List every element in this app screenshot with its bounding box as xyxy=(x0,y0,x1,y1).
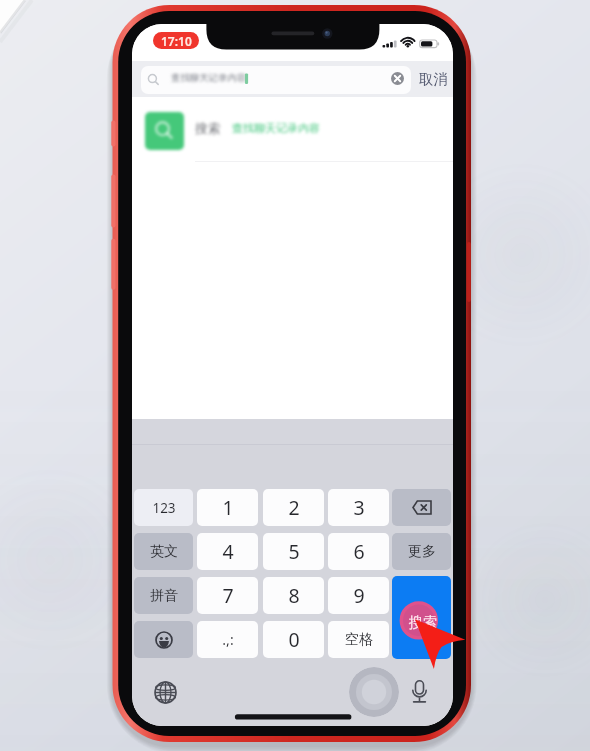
staticText: 查找聊天记录内容 xyxy=(232,121,320,135)
staticText: 查找聊天记录内容 xyxy=(171,72,247,84)
button[interactable]: Emoji xyxy=(134,621,193,658)
staticText: 123 xyxy=(152,499,176,517)
staticText: 8 xyxy=(288,582,300,609)
staticText: 0 xyxy=(288,626,300,653)
staticText: 1 xyxy=(222,494,234,521)
staticText: 搜索 xyxy=(409,614,437,632)
button[interactable]: 更多 xyxy=(392,533,451,570)
button[interactable]: 17:10 xyxy=(153,32,199,49)
button[interactable]: Switch keyboard xyxy=(154,681,177,704)
button[interactable]: 8 xyxy=(263,577,324,614)
button[interactable]: 4 xyxy=(197,533,258,570)
button[interactable]: 查找聊天记录内容 xyxy=(141,66,411,94)
staticText: 英文 xyxy=(150,543,178,561)
button[interactable]: 9 xyxy=(328,577,389,614)
button[interactable]: .,: xyxy=(197,621,258,658)
button[interactable]: 1 xyxy=(197,489,258,526)
button[interactable]: Clear xyxy=(391,72,404,85)
button[interactable]: 搜索 xyxy=(132,97,453,161)
staticText: 7 xyxy=(222,582,234,609)
staticText: 取消 xyxy=(419,70,448,88)
staticText: 拼音 xyxy=(150,587,178,605)
button[interactable]: Handwriting xyxy=(349,667,399,717)
staticText: 3 xyxy=(353,494,365,521)
button[interactable]: 取消 xyxy=(414,61,452,97)
button[interactable]: 搜索 xyxy=(392,576,451,659)
button[interactable]: 空格 xyxy=(328,621,389,658)
button[interactable]: 7 xyxy=(197,577,258,614)
staticText: 9 xyxy=(353,582,365,609)
button[interactable]: 英文 xyxy=(134,533,193,570)
button[interactable]: 0 xyxy=(263,621,324,658)
button[interactable]: 5 xyxy=(263,533,324,570)
staticText: 4 xyxy=(222,538,234,565)
staticText: 6 xyxy=(353,538,365,565)
button[interactable]: 2 xyxy=(263,489,324,526)
staticText: 17:10 xyxy=(161,33,192,49)
staticText: 空格 xyxy=(345,631,373,649)
staticText: 搜索 xyxy=(195,121,221,137)
staticText: .,: xyxy=(222,630,234,649)
button[interactable]: 3 xyxy=(328,489,389,526)
staticText: 更多 xyxy=(408,543,436,561)
staticText: 2 xyxy=(288,494,300,521)
staticText: 5 xyxy=(288,538,300,565)
button[interactable]: 6 xyxy=(328,533,389,570)
button[interactable]: 123 xyxy=(134,489,193,526)
button[interactable]: Backspace xyxy=(392,489,451,526)
button[interactable]: Voice input xyxy=(412,680,427,703)
button[interactable]: 拼音 xyxy=(134,577,193,614)
